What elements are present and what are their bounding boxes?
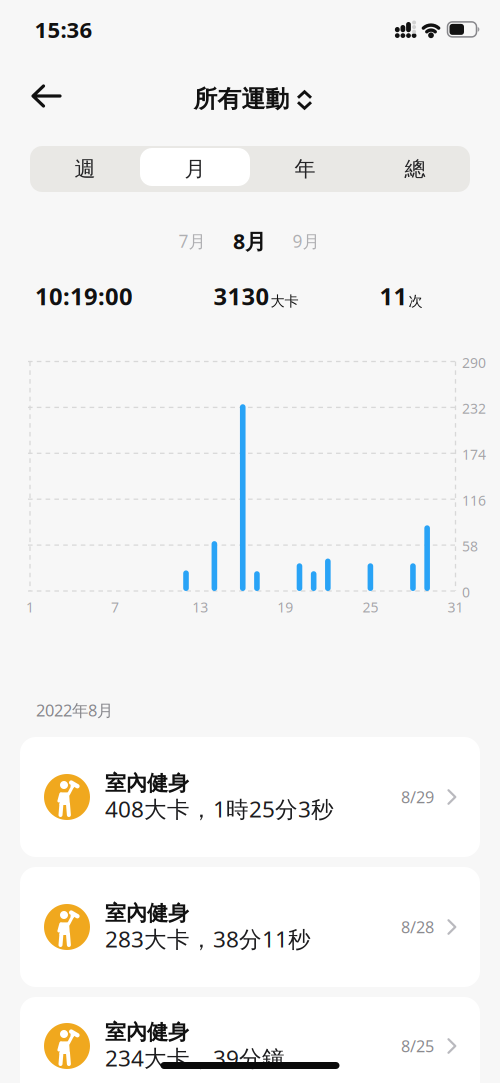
staticText: 室內健身	[105, 1019, 189, 1045]
staticText: 31	[447, 597, 463, 617]
staticText: 58	[462, 537, 478, 556]
staticText: 月	[184, 156, 205, 182]
button[interactable]: 室內健身	[20, 737, 480, 857]
button[interactable]: 室內健身	[20, 997, 480, 1083]
staticText: 15:36	[34, 14, 92, 44]
staticText: 大卡	[270, 292, 298, 310]
staticText: 7月	[178, 229, 205, 253]
button[interactable]: 8月	[233, 226, 266, 256]
staticText: 所有運動	[193, 84, 289, 114]
staticText: 總	[404, 156, 425, 182]
staticText: 9月	[292, 229, 319, 253]
staticText: 2022年8月	[36, 699, 113, 721]
staticText: 10:19:00	[35, 280, 133, 312]
staticText: 11	[379, 280, 407, 312]
staticText: 408大卡，1時25分3秒	[105, 793, 334, 824]
staticText: 室內健身	[105, 900, 189, 926]
staticText: 283大卡，38分11秒	[105, 923, 311, 954]
staticText: 次	[408, 292, 422, 310]
button[interactable]: 年	[250, 146, 360, 192]
staticText: 0	[462, 582, 470, 602]
staticText: 室內健身	[105, 770, 189, 796]
staticText: 1	[26, 597, 34, 617]
staticText: 年	[294, 156, 315, 182]
staticText: 13	[192, 597, 208, 617]
staticText: 8/29	[401, 786, 434, 808]
staticText: 19	[277, 597, 293, 617]
button[interactable]: Back	[23, 77, 70, 115]
staticText: 234大卡，39分鐘	[105, 1042, 285, 1073]
staticText: 7	[111, 597, 119, 617]
button[interactable]: 週	[30, 146, 140, 192]
button[interactable]: 9月	[292, 229, 319, 253]
button[interactable]: 總	[360, 146, 470, 192]
staticText: 8/28	[401, 916, 434, 938]
staticText: 3130	[213, 280, 269, 312]
button[interactable]: 7月	[178, 229, 205, 253]
staticText: 290	[462, 353, 486, 372]
staticText: 8月	[233, 226, 266, 256]
button[interactable]: 所有運動	[193, 84, 312, 114]
button[interactable]: 月	[140, 146, 250, 192]
staticText: 174	[462, 445, 486, 464]
staticText: 8/25	[401, 1035, 434, 1057]
button[interactable]: 室內健身	[20, 867, 480, 987]
staticText: 週	[74, 156, 95, 182]
staticText: 25	[362, 597, 378, 617]
staticText: 116	[462, 491, 486, 510]
staticText: 232	[462, 399, 486, 418]
